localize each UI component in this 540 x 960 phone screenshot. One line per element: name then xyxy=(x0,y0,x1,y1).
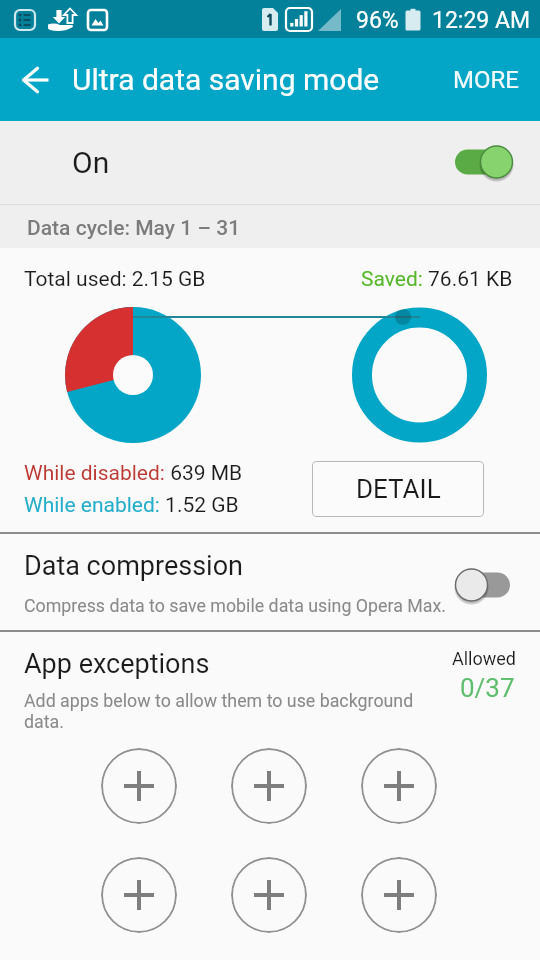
staticText: Compress data to save mobile data using … xyxy=(24,595,447,616)
staticText: Data cycle: May 1 – 31 xyxy=(27,216,241,241)
button[interactable]: DETAIL xyxy=(312,461,484,517)
button[interactable]: Add app exception xyxy=(361,857,437,933)
staticText: DETAIL xyxy=(356,474,441,504)
staticText: 96% xyxy=(356,7,399,34)
button[interactable]: Add app exception xyxy=(101,748,177,824)
button[interactable]: Data compression xyxy=(0,534,540,631)
button[interactable]: Add app exception xyxy=(231,748,307,824)
staticText: Allowed xyxy=(452,648,516,669)
staticText: 0/37 xyxy=(460,673,515,703)
staticText: While disabled: 639 MB xyxy=(24,461,243,486)
staticText: MORE xyxy=(453,66,519,94)
button[interactable]: Add app exception xyxy=(361,748,437,824)
staticText: On xyxy=(72,145,110,180)
staticText: Ultra data saving mode xyxy=(72,62,380,97)
staticText: App exceptions xyxy=(24,648,210,680)
button[interactable]: Navigate up xyxy=(9,51,65,107)
button[interactable]: On xyxy=(0,121,540,204)
staticText: Add apps below to allow them to use back… xyxy=(24,690,414,732)
staticText: 12:29 AM xyxy=(432,7,531,34)
staticText: Total used: 2.15 GB xyxy=(24,267,206,292)
staticText: Data compression xyxy=(24,550,243,582)
staticText: While enabled: 1.52 GB xyxy=(24,493,239,518)
staticText: Saved: 76.61 KB xyxy=(361,267,513,292)
button[interactable]: Add app exception xyxy=(101,857,177,933)
button[interactable]: MORE xyxy=(446,52,526,108)
button[interactable]: Add app exception xyxy=(231,857,307,933)
